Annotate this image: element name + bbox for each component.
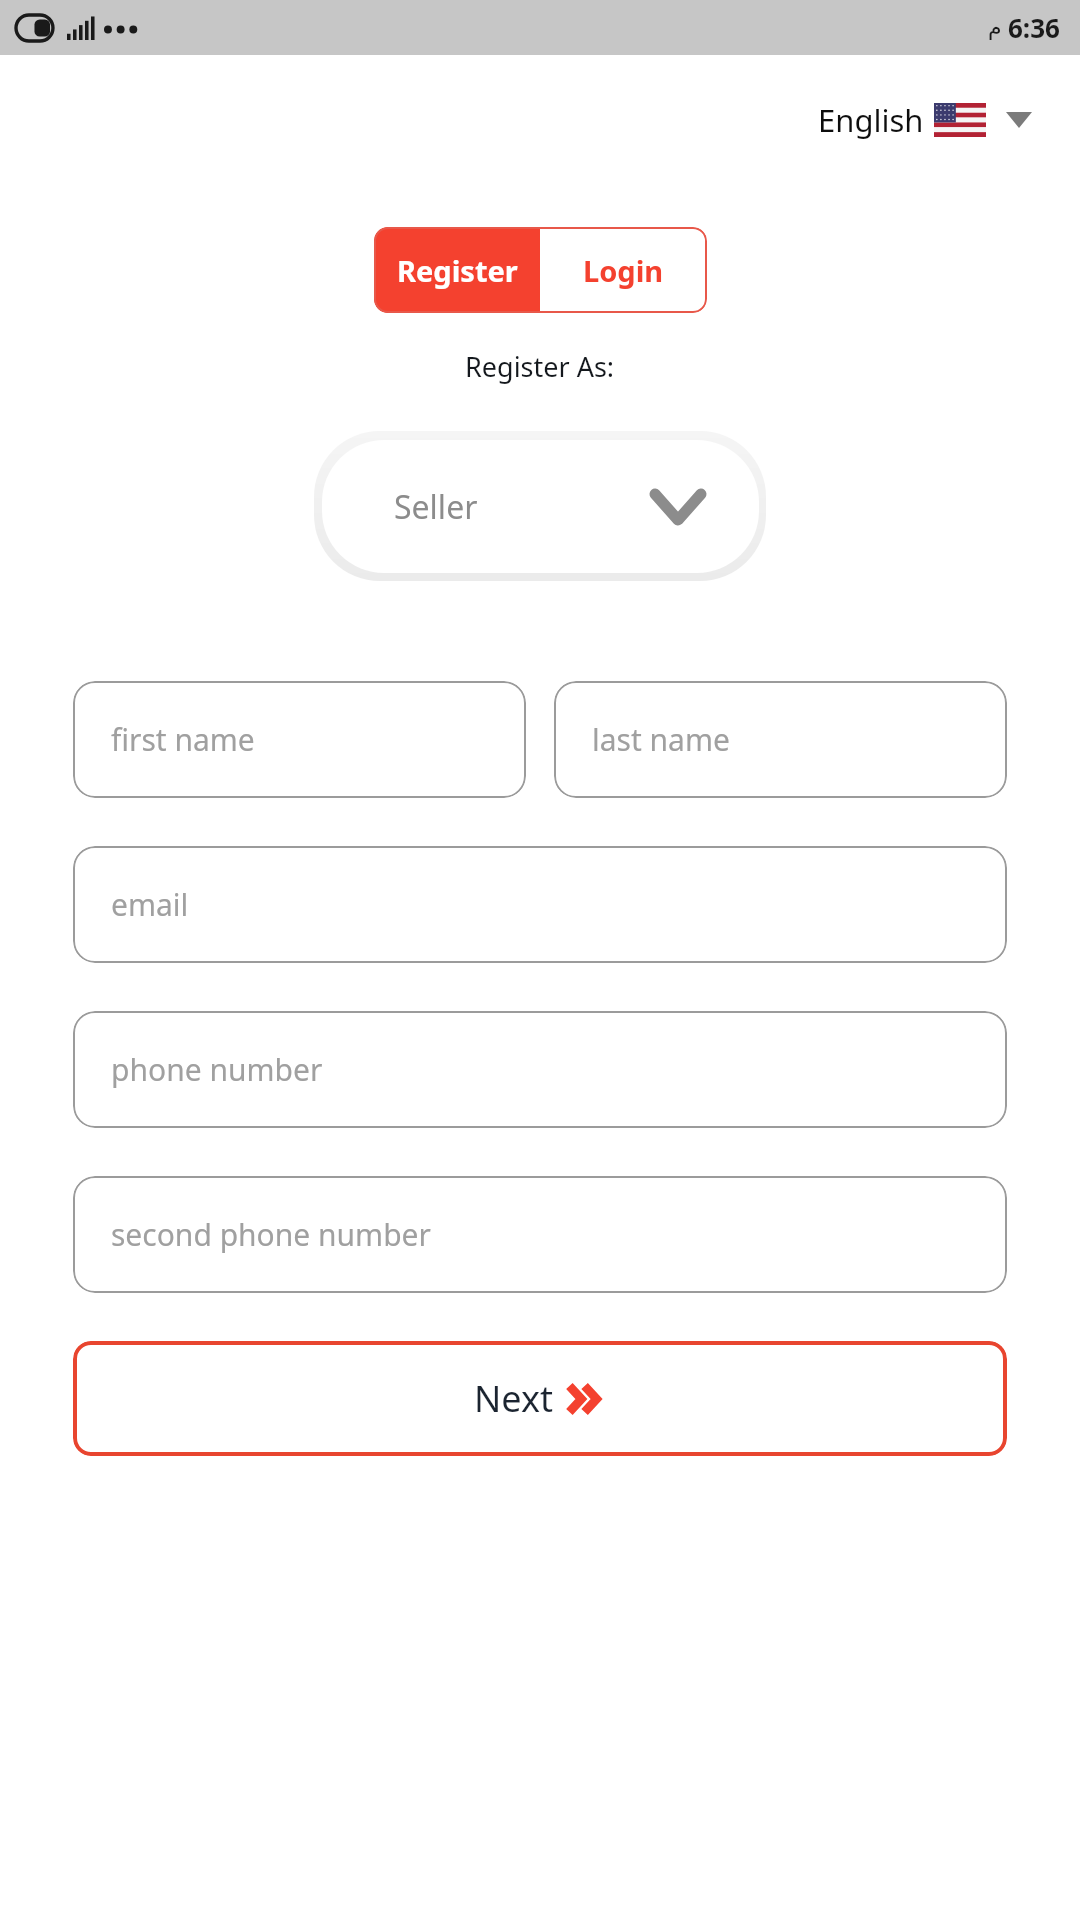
staticText: email bbox=[111, 884, 189, 925]
staticText: second phone number bbox=[111, 1214, 431, 1255]
other: Change language bbox=[1006, 112, 1032, 128]
staticText: م bbox=[988, 15, 1002, 41]
button[interactable]: Next bbox=[73, 1341, 1007, 1456]
staticText: 6:36 bbox=[1008, 10, 1060, 45]
staticText: English bbox=[818, 99, 924, 141]
staticText: Next bbox=[474, 1374, 553, 1423]
staticText: Register bbox=[397, 251, 518, 290]
button[interactable]: first name bbox=[73, 681, 526, 798]
staticText: first name bbox=[111, 719, 255, 760]
button[interactable]: Login bbox=[540, 227, 707, 313]
button[interactable]: email bbox=[73, 846, 1007, 963]
staticText: Login bbox=[583, 251, 664, 290]
staticText: Register As: bbox=[465, 348, 615, 385]
staticText: Seller bbox=[394, 485, 478, 529]
button[interactable]: last name bbox=[554, 681, 1007, 798]
button[interactable]: English bbox=[814, 93, 1036, 147]
button[interactable]: Seller bbox=[322, 440, 759, 573]
button[interactable]: second phone number bbox=[73, 1176, 1007, 1293]
staticText: phone number bbox=[111, 1049, 323, 1090]
staticText: last name bbox=[592, 719, 730, 760]
button[interactable]: phone number bbox=[73, 1011, 1007, 1128]
other: Expand role list bbox=[655, 494, 701, 520]
button[interactable]: Register bbox=[374, 227, 540, 313]
